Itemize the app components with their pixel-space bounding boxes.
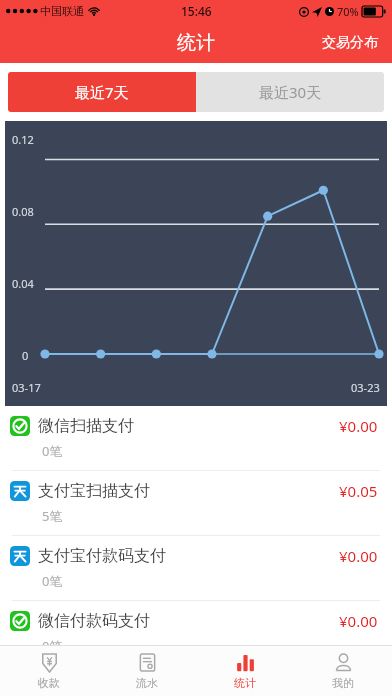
- button[interactable]: 最近30天: [196, 72, 384, 112]
- staticText: 我的: [332, 676, 354, 690]
- staticText: ¥0.00: [339, 611, 378, 631]
- staticText: 0.12: [12, 132, 34, 147]
- button[interactable]: 微信付款码支付: [0, 601, 392, 645]
- staticText: 03-17: [12, 380, 41, 395]
- staticText: 收款: [38, 676, 60, 690]
- button[interactable]: 微信扫描支付: [0, 406, 392, 470]
- staticText: 流水: [136, 676, 158, 690]
- staticText: 统计: [234, 676, 256, 690]
- button[interactable]: 流水: [98, 646, 196, 696]
- staticText: 支付宝扫描支付: [38, 481, 150, 501]
- button[interactable]: 支付宝扫描支付: [0, 471, 392, 535]
- staticText: ¥0.00: [339, 546, 378, 566]
- staticText: 0笔: [42, 572, 63, 590]
- staticText: 0.08: [12, 204, 34, 219]
- staticText: 0笔: [42, 637, 63, 645]
- staticText: 统计: [177, 31, 215, 55]
- staticText: 支付宝付款码支付: [38, 546, 166, 566]
- button[interactable]: 支付宝付款码支付: [0, 536, 392, 600]
- staticText: 最近7天: [75, 82, 129, 102]
- staticText: 03-23: [351, 380, 380, 395]
- staticText: 最近30天: [259, 82, 322, 102]
- staticText: 5笔: [42, 507, 63, 525]
- button[interactable]: 收款: [0, 646, 98, 696]
- staticText: 微信付款码支付: [38, 611, 150, 631]
- button[interactable]: 我的: [294, 646, 392, 696]
- staticText: 0: [22, 348, 29, 363]
- staticText: 0.04: [12, 276, 34, 291]
- staticText: ¥0.05: [339, 481, 378, 501]
- staticText: 中国联通: [40, 4, 84, 18]
- staticText: 15:46: [181, 3, 212, 19]
- staticText: 0笔: [42, 442, 63, 460]
- button[interactable]: 交易分布: [308, 26, 392, 60]
- staticText: 微信扫描支付: [38, 416, 134, 436]
- staticText: 70%: [337, 4, 359, 19]
- staticText: ¥0.00: [339, 416, 378, 436]
- button[interactable]: 最近7天: [8, 72, 196, 112]
- staticText: 交易分布: [322, 34, 378, 52]
- button[interactable]: 统计: [196, 646, 294, 696]
